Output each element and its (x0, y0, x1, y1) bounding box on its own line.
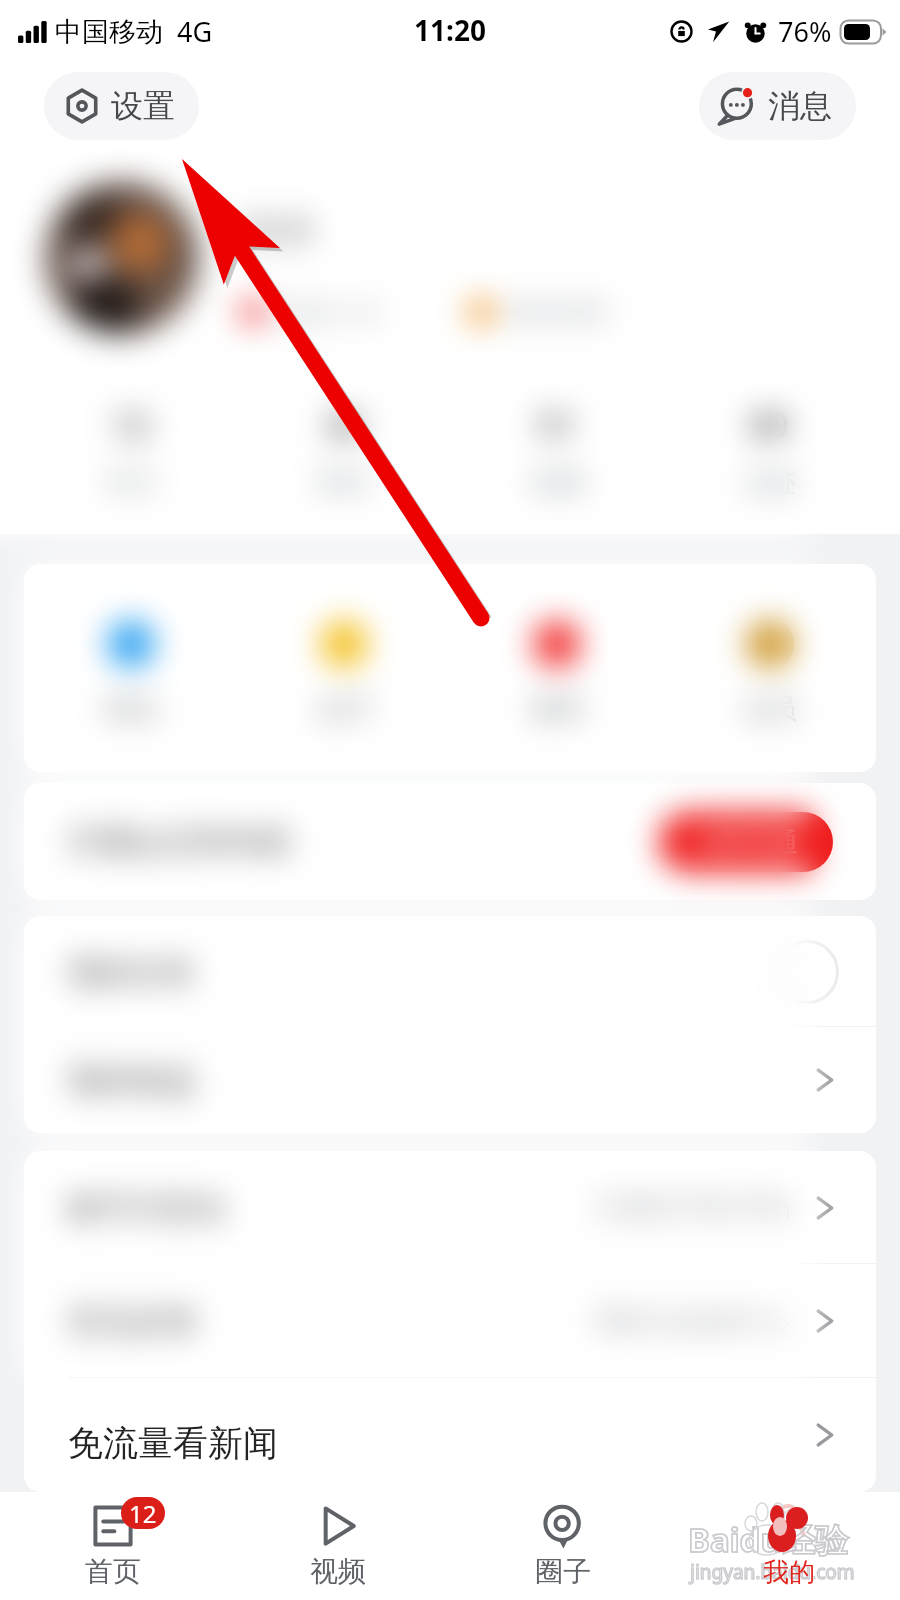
button[interactable]: 我的勋章 (468, 294, 610, 330)
staticText: 89 (750, 402, 789, 448)
staticText: 钱包 (104, 692, 158, 726)
staticText: 首页 (85, 1554, 141, 1589)
staticText: 36 (324, 402, 363, 448)
staticText: 圈子 (535, 1554, 591, 1589)
button[interactable]: 12 (0, 1492, 225, 1600)
button[interactable]: 圈子 (450, 1492, 675, 1600)
staticText: 51 (537, 402, 576, 448)
button[interactable]: 消息 (699, 72, 856, 140)
button[interactable]: 金币 (237, 564, 450, 772)
button[interactable]: Profile photo (46, 182, 198, 334)
button[interactable]: 金币 (237, 564, 450, 772)
staticText: 立即开通 (694, 826, 798, 859)
staticText: 12 (111, 402, 150, 448)
button[interactable]: 等级 LV6 (240, 294, 381, 330)
button[interactable]: 开通会员享特权 (24, 783, 876, 900)
button[interactable]: 立即开通 (659, 812, 833, 872)
button[interactable]: 立即开通 (659, 812, 833, 872)
button[interactable]: 51 (450, 402, 663, 522)
button[interactable]: 圈子 (450, 1492, 675, 1600)
button[interactable]: 51 (450, 402, 663, 522)
button[interactable]: 账号与安全 (24, 1151, 876, 1264)
button[interactable]: 消息 (699, 72, 856, 140)
button[interactable]: 视频 (225, 1492, 450, 1600)
staticText: 小小 (238, 206, 314, 254)
button[interactable]: 视频 (225, 1492, 450, 1600)
button[interactable]: 钱包 (24, 564, 237, 772)
button[interactable] (675, 1492, 900, 1600)
staticText: 11:20 (414, 11, 486, 49)
staticText: 12 (129, 1497, 157, 1529)
staticText: 开通会员享特权 (68, 822, 292, 862)
button[interactable]: 等级 LV6 (240, 294, 381, 330)
button[interactable] (675, 1492, 900, 1600)
button[interactable]: 12 (24, 402, 237, 522)
staticText: 消息 (768, 86, 832, 126)
staticText: 意见反馈 (68, 1301, 196, 1341)
button[interactable]: 设置 (44, 72, 199, 140)
button[interactable]: 免流量看新闻 (24, 1378, 876, 1492)
staticText: 金币 (317, 692, 371, 726)
staticText: 小小 (238, 206, 314, 254)
staticText: 我的收益 (68, 1060, 196, 1100)
button[interactable]: 89 (663, 402, 876, 522)
button[interactable]: 我的收益 (24, 1027, 876, 1133)
staticText: 中国移动 (55, 15, 163, 49)
button[interactable]: 意见反馈 (24, 1264, 876, 1378)
button[interactable]: 36 (237, 402, 450, 522)
staticText: 中国移动 (55, 15, 163, 49)
staticText: 帮助与反馈中心 (594, 1304, 790, 1339)
button[interactable]: 邀请 (450, 564, 663, 772)
button[interactable]: 会员 (663, 564, 876, 772)
button[interactable]: Profile photo (46, 182, 198, 334)
staticText: 会员 (743, 692, 797, 726)
staticText: 我的任务 (68, 952, 196, 992)
staticText: 视频 (310, 1554, 366, 1589)
staticText: 4G (177, 13, 213, 50)
staticText: 我的 (763, 1556, 815, 1589)
staticText: Baidu经验 (688, 1517, 848, 1562)
staticText: 免流量看新闻 (68, 1421, 278, 1465)
staticText: 设置 (111, 86, 175, 126)
staticText: 邀请 (530, 692, 584, 726)
staticText: jingyan.baidu.com (690, 1559, 855, 1585)
staticText: 等级 LV6 (278, 294, 381, 330)
staticText: 收藏 (531, 466, 583, 499)
staticText: 等级 LV6 (278, 294, 381, 330)
staticText: 钱包 (104, 692, 158, 726)
button[interactable]: 意见反馈 (24, 1264, 876, 1378)
staticText: 账号与安全 (68, 1188, 228, 1228)
staticText: 我的勋章 (506, 296, 610, 329)
button[interactable]: 我的任务 (24, 916, 876, 1027)
button[interactable]: 12 (0, 1492, 225, 1600)
staticText: 圈子 (535, 1554, 591, 1589)
button[interactable]: 12 (24, 402, 237, 522)
button[interactable]: 会员 (663, 564, 876, 772)
button[interactable]: 设置 (44, 72, 199, 140)
staticText: 首页 (85, 1554, 141, 1589)
button[interactable]: 钱包 (24, 564, 237, 772)
button[interactable]: 我的收益 (24, 1027, 876, 1133)
staticText: 76% (778, 13, 832, 50)
staticText: 4G (177, 13, 213, 50)
button[interactable]: 89 (663, 402, 876, 522)
staticText: 我的勋章 (506, 296, 610, 329)
button[interactable]: 邀请 (450, 564, 663, 772)
button[interactable]: 我的勋章 (468, 294, 610, 330)
staticText: 12 (129, 1497, 157, 1529)
staticText: 金币 (317, 692, 371, 726)
staticText: 11:20 (414, 11, 486, 49)
button[interactable]: 开通会员享特权 (24, 783, 876, 900)
button[interactable]: 免流量看新闻 (24, 1378, 876, 1492)
button[interactable]: 我的任务 (24, 916, 876, 1027)
staticText: 视频 (310, 1554, 366, 1589)
button[interactable]: 36 (237, 402, 450, 522)
staticText: 51 (537, 402, 576, 448)
button[interactable]: 账号与安全 (24, 1151, 876, 1264)
staticText: 收藏 (531, 466, 583, 499)
staticText: 89 (750, 402, 789, 448)
